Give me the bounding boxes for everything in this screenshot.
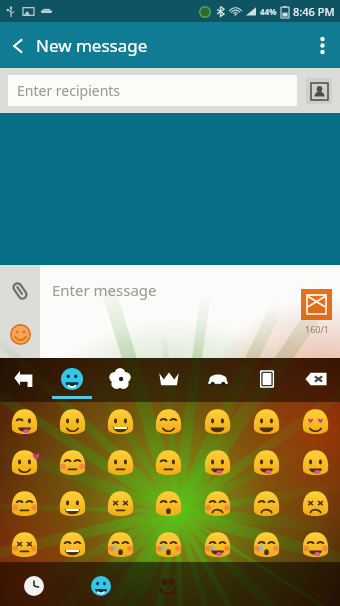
staticText: New message [36,34,148,57]
staticText: 160/1 [305,323,329,335]
button[interactable]: Emoji [96,525,144,566]
button[interactable]: More options [304,22,340,68]
button[interactable]: Emoji [0,402,48,443]
button[interactable]: Emoji [96,402,144,443]
button[interactable]: Emoji [291,443,340,484]
button[interactable]: Emoji [5,319,35,349]
button[interactable]: Emoji [193,484,242,525]
button[interactable]: Recent [0,566,67,606]
button[interactable]: Emoji [96,484,144,525]
staticText: 8:46 PM [293,4,335,19]
button[interactable]: Smileys [48,358,96,400]
button[interactable]: Emoji [0,443,48,484]
button[interactable]: Emoji [96,443,144,484]
button[interactable]: Emoji [193,525,242,566]
button[interactable]: Emoji [242,443,291,484]
button[interactable]: Travel [193,358,242,400]
staticText: 44% [260,6,277,17]
button[interactable]: Emoji [48,484,96,525]
button[interactable]: Return [0,358,48,400]
button[interactable]: Emoji [242,525,291,566]
button[interactable]: Emoji [291,525,340,566]
button[interactable]: Emoji [242,402,291,443]
button[interactable]: Symbols [242,358,291,400]
button[interactable]: Emoji [0,525,48,566]
button[interactable]: Emoji [242,484,291,525]
button[interactable]: Emoji [144,443,193,484]
button[interactable]: Stickers [134,566,201,606]
button[interactable]: Emoji [291,402,340,443]
button[interactable]: Smileys [67,566,134,606]
button[interactable]: Send [301,289,332,320]
button[interactable]: Enter recipients [8,75,297,106]
button[interactable]: Nature [96,358,144,400]
button[interactable]: Back [10,34,156,57]
staticText: Enter message [52,280,157,300]
button[interactable]: Add contact [306,78,332,104]
button[interactable]: Celebration [144,358,193,400]
button[interactable]: Emoji [144,484,193,525]
button[interactable]: Attach [5,276,35,306]
staticText: Enter recipients [17,81,121,100]
button[interactable]: Emoji [48,443,96,484]
button[interactable]: Delete [291,358,340,400]
button[interactable]: Enter message [40,265,340,358]
button[interactable]: Emoji [48,402,96,443]
button[interactable]: Emoji [0,484,48,525]
button[interactable]: Emoji [144,402,193,443]
button[interactable]: Emoji [193,443,242,484]
button[interactable]: Emoji [48,525,96,566]
button[interactable]: Emoji [291,484,340,525]
button[interactable]: Emoji [144,525,193,566]
button[interactable]: Emoji [193,402,242,443]
other: Back [10,38,26,54]
